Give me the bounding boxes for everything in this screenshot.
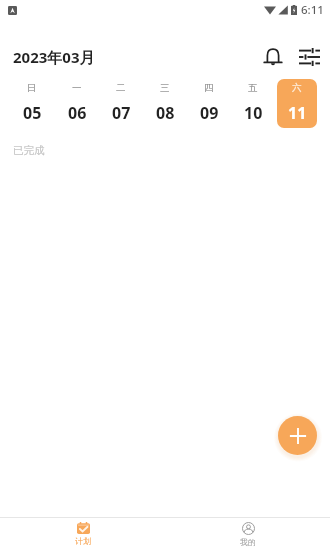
staticText: 11 (288, 102, 307, 124)
staticText: 已完成 (13, 144, 45, 157)
button[interactable]: Add task (278, 416, 317, 455)
staticText: 五 (248, 82, 258, 94)
staticText: 三 (160, 82, 170, 94)
staticText: 06 (68, 102, 87, 124)
button[interactable]: 我的 (165, 518, 330, 550)
staticText: 我的 (240, 537, 256, 547)
staticText: 二 (116, 82, 126, 94)
staticText: 6:11 (301, 2, 324, 18)
button[interactable]: 日 (12, 79, 52, 128)
button[interactable]: Settings (295, 43, 323, 71)
staticText: 07 (112, 102, 131, 124)
staticText: 2023年03月 (13, 47, 95, 67)
button[interactable]: Notifications (259, 43, 287, 71)
staticText: 日 (27, 82, 37, 94)
staticText: 10 (244, 102, 263, 124)
button[interactable]: 六 (277, 79, 317, 128)
button[interactable]: 四 (189, 79, 229, 128)
button[interactable]: 计划 (0, 518, 165, 550)
staticText: 四 (204, 82, 214, 94)
staticText: 计划 (75, 536, 91, 546)
staticText: 09 (200, 102, 219, 124)
staticText: 05 (23, 102, 42, 124)
button[interactable]: 二 (101, 79, 141, 128)
staticText: 08 (156, 102, 175, 124)
staticText: 一 (72, 82, 82, 94)
button[interactable]: 三 (145, 79, 185, 128)
staticText: 六 (292, 82, 302, 94)
button[interactable]: 五 (233, 79, 273, 128)
button[interactable]: 一 (57, 79, 97, 128)
